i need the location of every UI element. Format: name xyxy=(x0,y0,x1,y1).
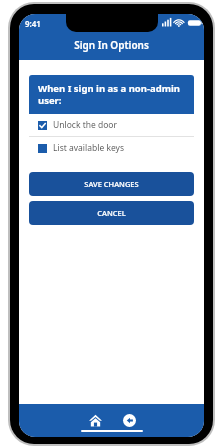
button[interactable]: Back xyxy=(118,409,140,431)
staticText: Unlock the door xyxy=(53,119,117,131)
staticText: Sign In Options xyxy=(74,38,149,52)
staticText: SAVE CHANGES xyxy=(84,179,139,189)
staticText: 9:41 xyxy=(25,18,41,29)
button[interactable]: SAVE CHANGES xyxy=(29,172,194,196)
button[interactable]: CANCEL xyxy=(29,201,194,225)
staticText: CANCEL xyxy=(97,208,126,218)
button[interactable]: List available keys xyxy=(29,137,194,159)
staticText: List available keys xyxy=(53,142,125,154)
button[interactable]: Home xyxy=(84,409,106,431)
staticText: When I sign in as a non-admin user: xyxy=(38,82,185,107)
button[interactable]: Unlock the door xyxy=(29,114,194,136)
